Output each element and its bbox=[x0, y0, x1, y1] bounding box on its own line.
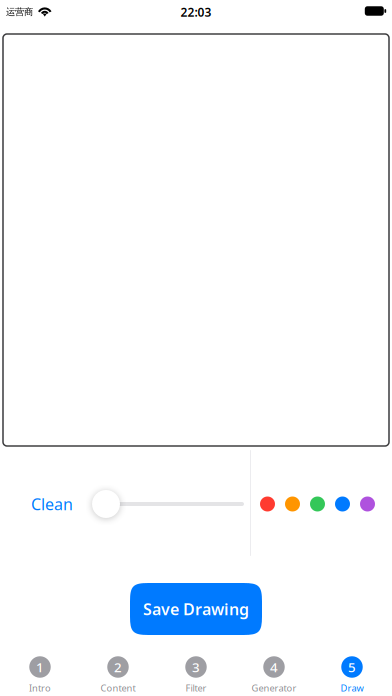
button[interactable]: Clean bbox=[30, 490, 74, 518]
button[interactable]: Blue bbox=[335, 492, 350, 516]
button[interactable]: Red bbox=[260, 492, 275, 516]
button[interactable]: 3 bbox=[157, 648, 235, 696]
button[interactable]: 5 bbox=[313, 648, 391, 696]
staticText: 3 bbox=[192, 658, 200, 676]
staticText: Draw bbox=[340, 682, 363, 694]
staticText: 5 bbox=[348, 658, 356, 676]
button[interactable]: Save Drawing bbox=[130, 583, 262, 635]
staticText: 22:03 bbox=[180, 4, 211, 20]
staticText: Clean bbox=[31, 493, 73, 515]
staticText: Intro bbox=[29, 682, 51, 694]
staticText: 运营商 bbox=[6, 6, 33, 18]
staticText: Generator bbox=[251, 682, 296, 694]
staticText: 2 bbox=[114, 658, 122, 676]
staticText: 4 bbox=[270, 658, 278, 676]
button[interactable]: 2 bbox=[79, 648, 157, 696]
button[interactable]: Orange bbox=[285, 492, 300, 516]
staticText: Content bbox=[100, 682, 135, 694]
button[interactable]: 1 bbox=[1, 648, 79, 696]
button[interactable]: Green bbox=[310, 492, 325, 516]
staticText: Filter bbox=[185, 682, 206, 694]
button[interactable]: 4 bbox=[235, 648, 313, 696]
staticText: 1 bbox=[36, 658, 44, 676]
staticText: Save Drawing bbox=[143, 598, 249, 620]
button[interactable]: Purple bbox=[360, 492, 375, 516]
